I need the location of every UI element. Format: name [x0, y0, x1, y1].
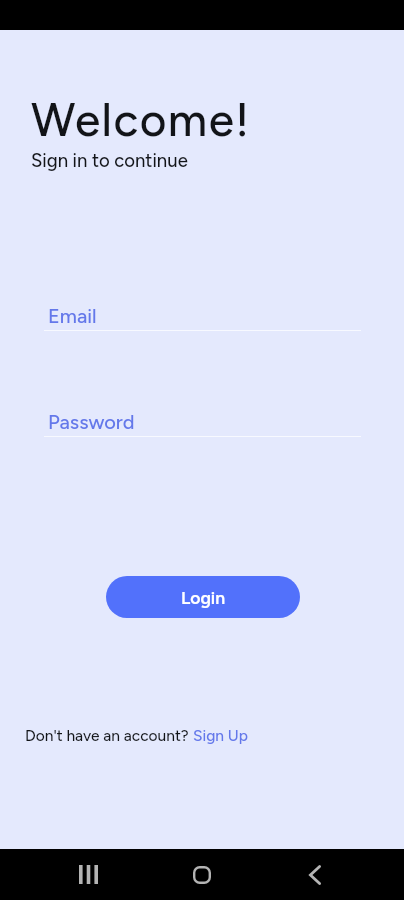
staticText: Welcome! — [31, 92, 251, 147]
button[interactable]: Home — [162, 849, 242, 900]
staticText: Sign Up — [193, 726, 248, 745]
button[interactable]: Password — [44, 406, 361, 440]
button[interactable]: Recent apps — [48, 849, 128, 900]
button[interactable]: Sign Up — [193, 726, 248, 745]
staticText: Email — [48, 304, 97, 328]
staticText: Sign in to continue — [31, 149, 188, 171]
button[interactable]: Login — [106, 576, 300, 618]
staticText: Don't have an account? — [25, 726, 193, 745]
button[interactable]: Back — [275, 849, 355, 900]
staticText: Password — [48, 410, 135, 434]
staticText: Login — [181, 587, 226, 608]
button[interactable]: Email — [44, 300, 361, 334]
